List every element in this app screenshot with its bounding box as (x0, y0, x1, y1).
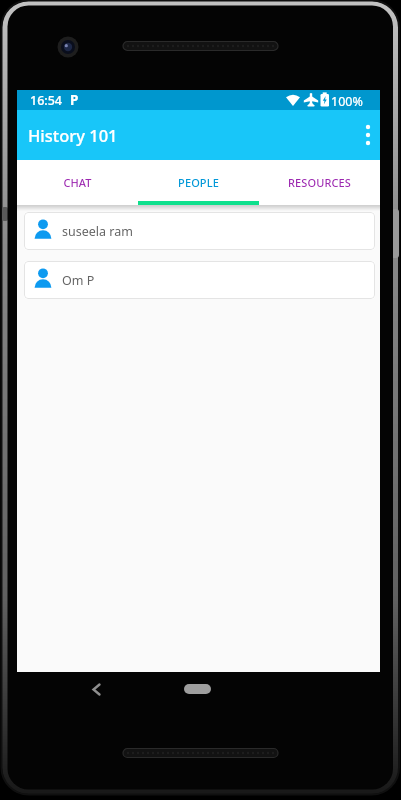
staticText: RESOURCES (288, 175, 351, 190)
staticText: PEOPLE (178, 175, 219, 190)
staticText: CHAT (63, 175, 92, 190)
staticText: 100% (331, 93, 363, 110)
button[interactable] (85, 678, 109, 702)
button[interactable]: RESOURCES (259, 160, 380, 205)
staticText: 16:54 (30, 92, 63, 109)
button[interactable]: PEOPLE (138, 160, 259, 205)
button[interactable] (184, 684, 211, 694)
button[interactable]: CHAT (17, 160, 138, 205)
staticText: Om P (62, 272, 95, 289)
staticText: P (70, 91, 79, 109)
button[interactable] (356, 123, 380, 147)
button[interactable]: Om P (24, 261, 375, 299)
button[interactable]: suseela ram (24, 212, 375, 250)
staticText: History 101 (28, 124, 118, 146)
staticText: suseela ram (62, 223, 133, 240)
